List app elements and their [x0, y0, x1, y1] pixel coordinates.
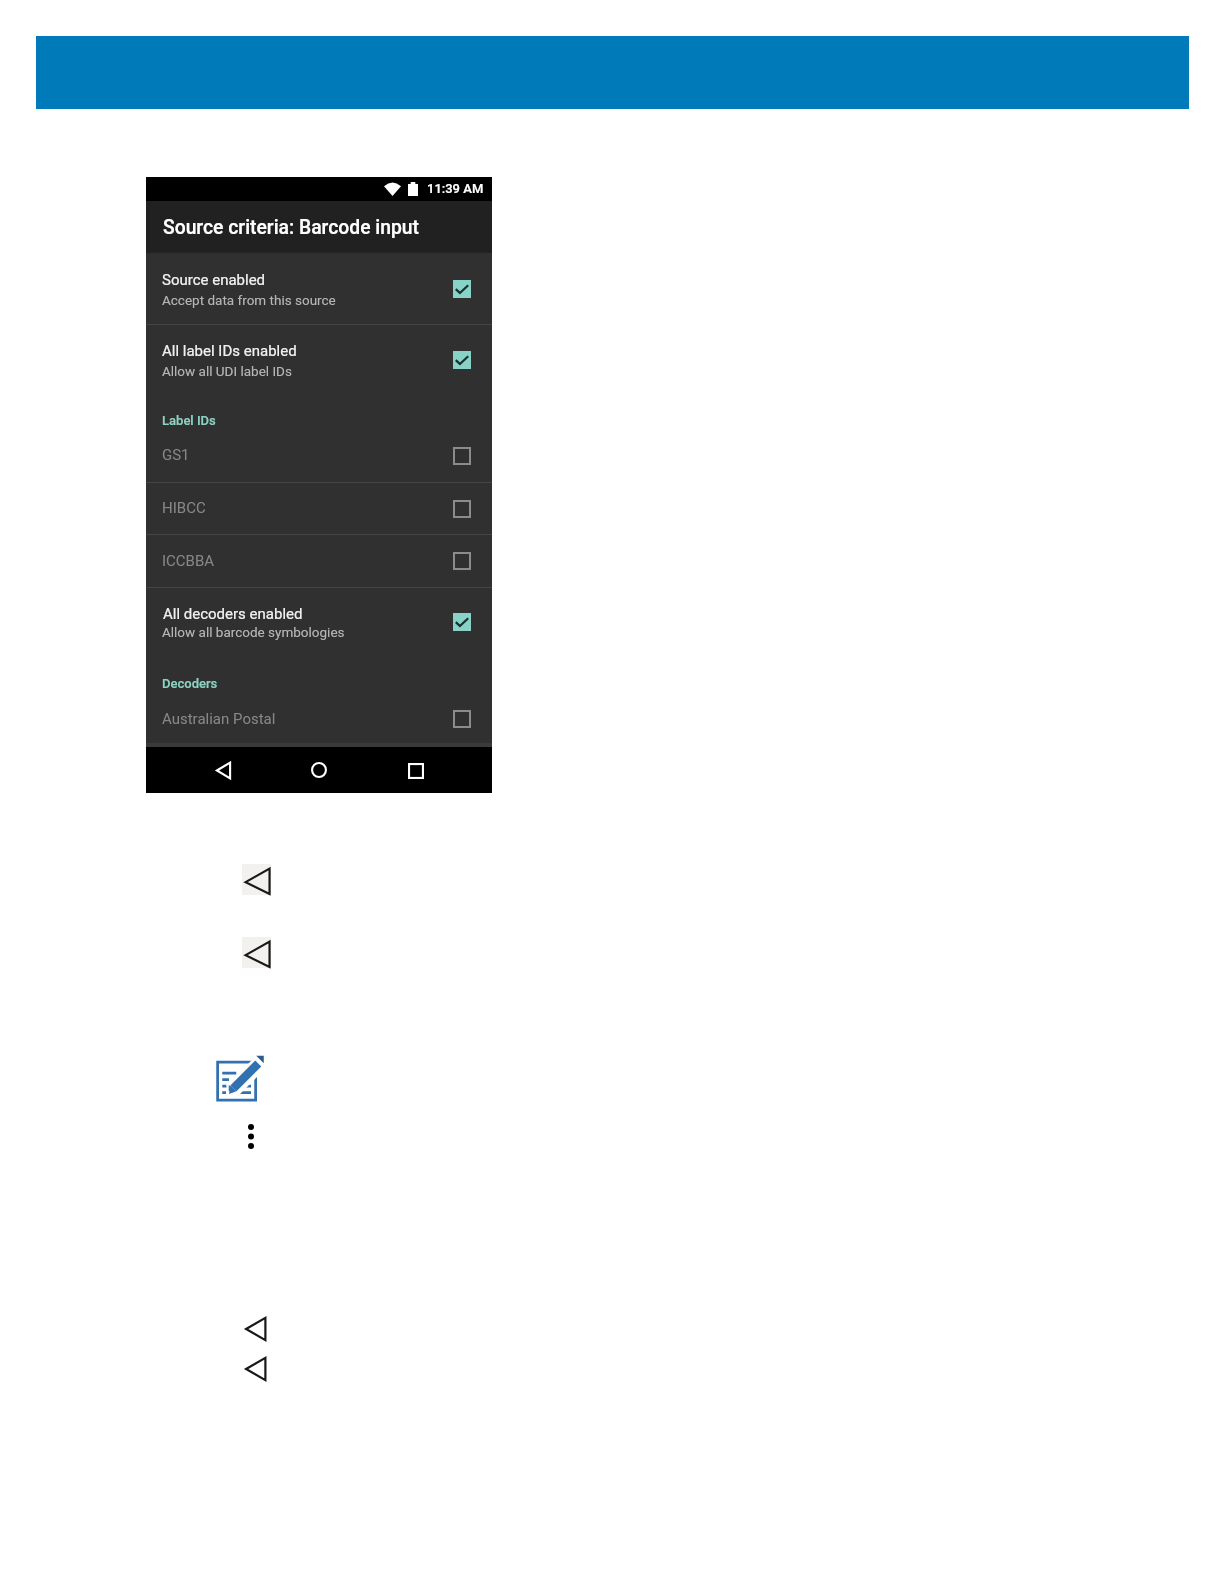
staticText: ICCBBA: [162, 552, 215, 570]
staticText: All decoders enabled: [163, 605, 303, 623]
button[interactable]: Edit: [214, 1054, 264, 1104]
button[interactable]: [146, 535, 492, 586]
button[interactable]: [146, 587, 492, 668]
staticText: Allow all barcode symbologies: [162, 624, 345, 640]
button[interactable]: Recents: [408, 763, 424, 779]
button[interactable]: [146, 437, 492, 482]
button[interactable]: Home: [311, 762, 327, 778]
staticText: Source enabled: [162, 271, 266, 289]
staticText: All label IDs enabled: [162, 342, 297, 360]
button[interactable]: [146, 325, 492, 406]
button[interactable]: [146, 700, 492, 744]
staticText: 11:39 AM: [427, 181, 484, 196]
staticText: Source criteria: Barcode input: [163, 216, 420, 239]
staticText: Allow all UDI label IDs: [162, 363, 292, 379]
staticText: Decoders: [162, 676, 218, 691]
button[interactable]: Back: [244, 1356, 267, 1382]
staticText: Australian Postal: [162, 710, 276, 728]
button[interactable]: [146, 483, 492, 534]
staticText: HIBCC: [162, 499, 206, 517]
button[interactable]: Back: [216, 762, 231, 779]
button[interactable]: Back: [244, 1316, 267, 1342]
button[interactable]: Back: [242, 864, 271, 895]
button[interactable]: Back: [242, 937, 271, 968]
button[interactable]: More options: [248, 1124, 254, 1149]
staticText: Label IDs: [162, 413, 216, 428]
staticText: Accept data from this source: [162, 292, 336, 308]
button[interactable]: [146, 251, 492, 324]
staticText: GS1: [162, 446, 190, 464]
